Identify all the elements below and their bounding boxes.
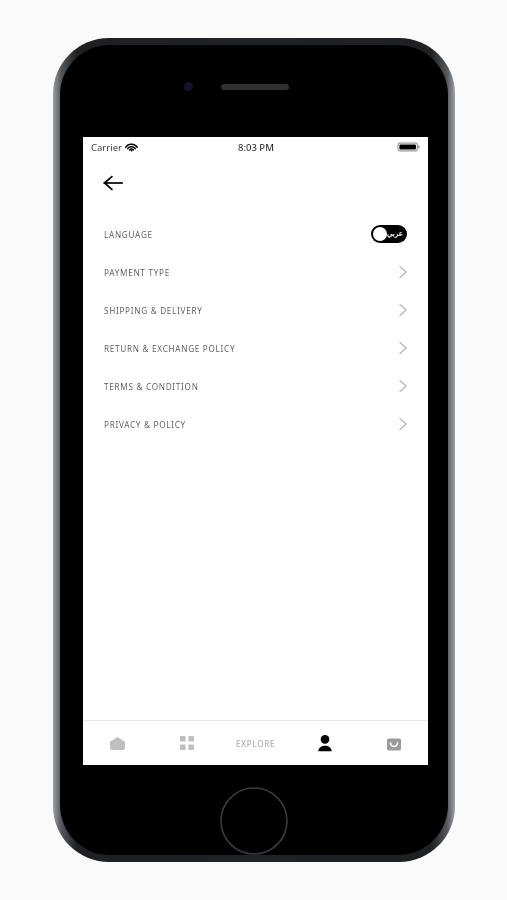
staticText: LANGUAGE (104, 229, 153, 240)
button[interactable]: PAYMENT TYPE (83, 253, 428, 291)
button[interactable]: Bag (359, 721, 428, 765)
staticText: عربي (387, 230, 403, 238)
other: Home button (220, 787, 288, 855)
button[interactable]: Categories (152, 721, 221, 765)
staticText: SHIPPING & DELIVERY (104, 305, 203, 316)
button[interactable]: PRIVACY & POLICY (83, 405, 428, 443)
staticText: EXPLORE (236, 738, 276, 749)
staticText: TERMS & CONDITION (104, 381, 199, 392)
button[interactable]: SHIPPING & DELIVERY (83, 291, 428, 329)
staticText: PRIVACY & POLICY (104, 419, 186, 430)
button[interactable]: TERMS & CONDITION (83, 367, 428, 405)
button[interactable]: Home (83, 721, 152, 765)
staticText: 8:03 PM (238, 141, 274, 154)
button[interactable]: Back (91, 161, 135, 205)
staticText: PAYMENT TYPE (104, 267, 170, 278)
button[interactable]: Profile (290, 721, 359, 765)
button[interactable]: Language toggle (371, 225, 407, 243)
button[interactable]: Explore (221, 721, 290, 765)
staticText: Carrier (91, 141, 122, 154)
button[interactable]: RETURN & EXCHANGE POLICY (83, 329, 428, 367)
staticText: RETURN & EXCHANGE POLICY (104, 343, 236, 354)
